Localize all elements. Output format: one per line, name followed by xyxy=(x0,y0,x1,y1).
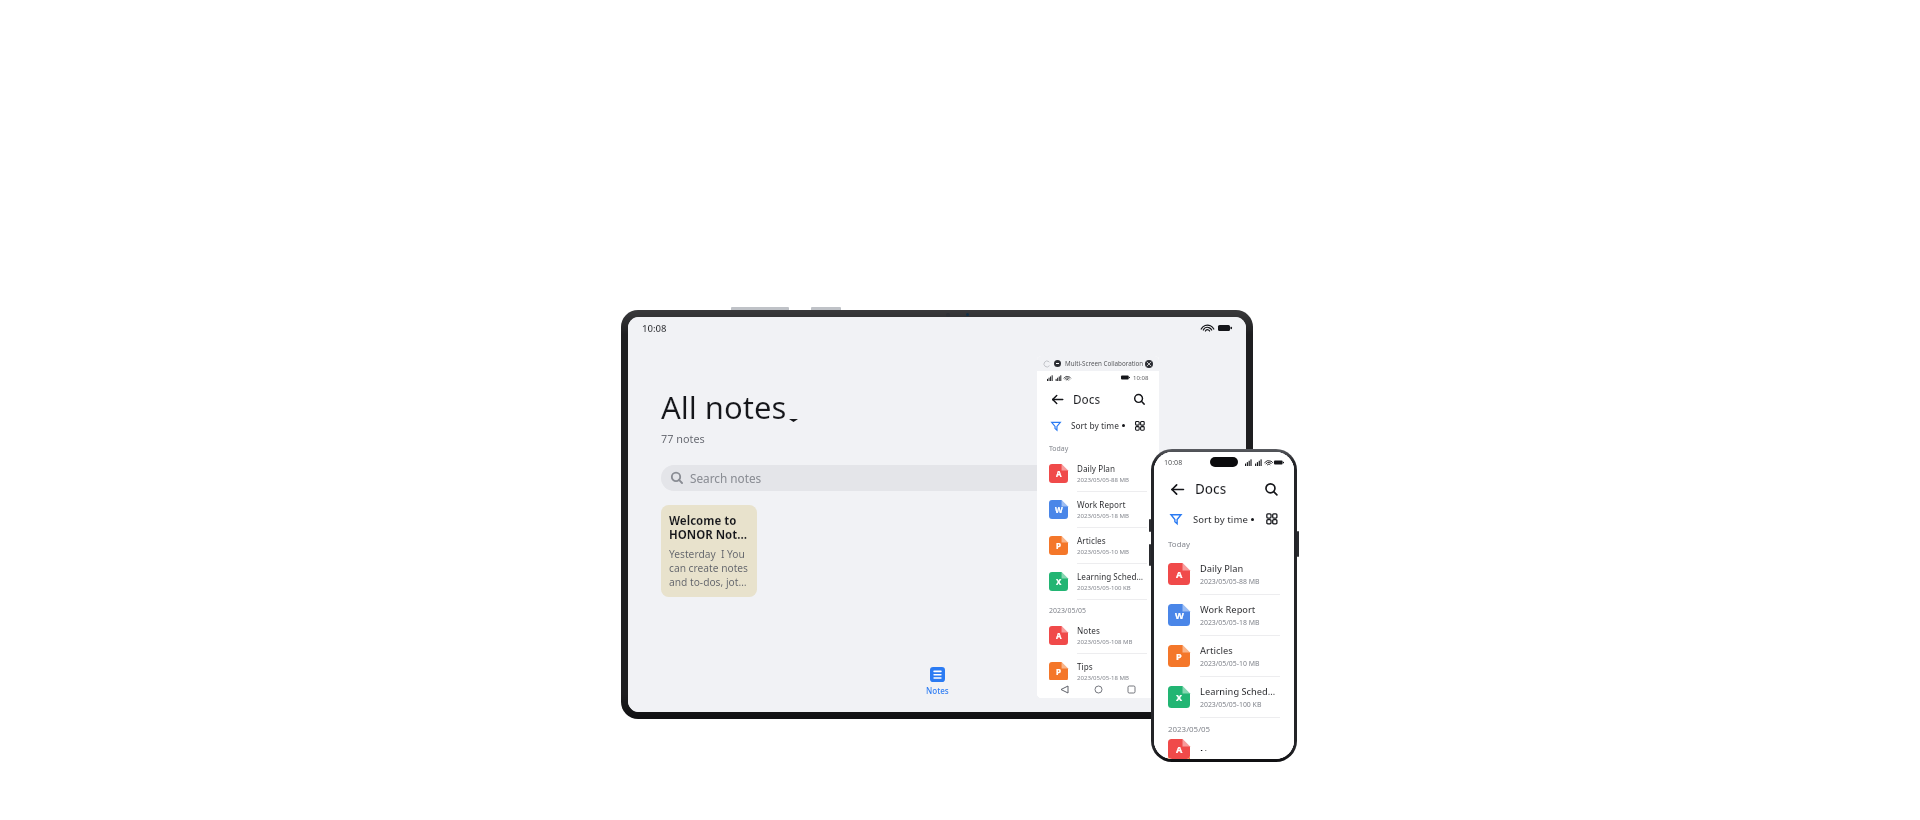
staticText: 2023/05/05 xyxy=(1168,724,1211,735)
staticText: A xyxy=(1176,743,1183,755)
staticText: Yesterday I You can create notes and to-… xyxy=(669,547,749,589)
staticText: Notes xyxy=(1077,625,1100,636)
staticText: Docs xyxy=(1195,480,1227,498)
staticText: Daily Plan xyxy=(1200,562,1244,575)
staticText: A xyxy=(1056,468,1062,479)
staticText: W xyxy=(1055,504,1063,515)
staticText: 2023/05/05-88 MB xyxy=(1200,577,1260,586)
staticText: 2023/05/05-100 KB xyxy=(1200,700,1262,709)
staticText: Today xyxy=(1168,539,1190,550)
staticText: Welcome to HONOR Notes xyxy=(669,513,749,543)
button[interactable]: W xyxy=(1037,492,1159,527)
staticText: Articles xyxy=(1200,644,1233,657)
staticText: 2023/05/05-88 MB xyxy=(1077,476,1130,484)
staticText: Learning Schedule xyxy=(1200,685,1280,698)
button[interactable]: Notes xyxy=(910,667,965,696)
button[interactable]: Filter xyxy=(1167,510,1185,528)
button[interactable]: Back xyxy=(1058,683,1071,696)
button[interactable]: P xyxy=(1037,654,1159,689)
staticText: Search notes xyxy=(690,470,762,486)
staticText: 2023/05/05-10 MB xyxy=(1200,659,1260,668)
staticText: A xyxy=(1176,568,1183,580)
staticText: W xyxy=(1175,609,1184,621)
button[interactable]: Home xyxy=(1092,683,1105,696)
staticText: P xyxy=(1056,540,1061,551)
button[interactable]: Minimize xyxy=(1054,360,1061,367)
staticText: 2023/05/05 xyxy=(1049,606,1086,615)
button[interactable]: P xyxy=(1154,636,1294,676)
staticText: P xyxy=(1176,650,1182,662)
staticText: Learning Schedule xyxy=(1077,571,1147,582)
button[interactable]: Filter xyxy=(1048,418,1064,434)
staticText: Sort by time xyxy=(1193,513,1248,526)
button[interactable]: Search xyxy=(1130,390,1148,408)
button[interactable]: X xyxy=(1037,564,1159,599)
staticText: Work Report xyxy=(1200,603,1256,616)
button[interactable]: Close xyxy=(1145,360,1153,368)
button[interactable]: Search xyxy=(1261,479,1281,499)
button[interactable]: A xyxy=(1037,456,1159,491)
staticText: 10:08 xyxy=(1133,374,1149,382)
button[interactable]: All notes xyxy=(661,386,798,428)
button[interactable]: W xyxy=(1154,595,1294,635)
button[interactable]: Welcome to HONOR Notes xyxy=(661,505,757,597)
staticText: Articles xyxy=(1077,535,1106,546)
staticText: 2023/05/05-100 KB xyxy=(1077,584,1131,592)
button[interactable]: Grid view xyxy=(1132,418,1148,434)
button[interactable]: A xyxy=(1154,554,1294,594)
button[interactable]: Grid view xyxy=(1263,510,1281,528)
staticText: Notes xyxy=(1200,747,1227,751)
button[interactable]: A xyxy=(1154,739,1294,759)
staticText: Notes xyxy=(926,685,949,696)
staticText: Tips xyxy=(1077,661,1093,672)
staticText: Sort by time xyxy=(1071,420,1119,431)
staticText: 2023/05/05-18 MB xyxy=(1200,618,1260,627)
button[interactable]: P xyxy=(1037,528,1159,563)
button[interactable]: X xyxy=(1154,677,1294,717)
button[interactable]: Back xyxy=(1167,479,1187,499)
button[interactable]: Search notes xyxy=(661,465,1213,491)
staticText: A xyxy=(1056,630,1062,641)
staticText: 10:08 xyxy=(642,322,667,335)
staticText: 2023/05/05-18 MB xyxy=(1077,674,1130,682)
staticText: 77 notes xyxy=(661,431,705,446)
staticText: X xyxy=(1176,691,1183,703)
button[interactable]: Sort by time xyxy=(1071,420,1125,431)
staticText: 10:08 xyxy=(1164,457,1183,467)
staticText: Today xyxy=(1049,444,1069,453)
staticText: P xyxy=(1056,666,1061,677)
staticText: 2023/05/05-108 MB xyxy=(1077,638,1133,646)
button[interactable]: Rotate xyxy=(1043,360,1051,368)
staticText: Daily Plan xyxy=(1077,463,1115,474)
staticText: Multi-Screen Collaboration xyxy=(1065,359,1144,368)
staticText: X xyxy=(1056,576,1062,587)
button[interactable]: Sort by time xyxy=(1193,513,1254,526)
button[interactable]: Recents xyxy=(1125,683,1138,696)
staticText: 2023/05/05-18 MB xyxy=(1077,512,1130,520)
staticText: Docs xyxy=(1073,391,1101,407)
button[interactable]: Back xyxy=(1048,390,1066,408)
staticText: Work Report xyxy=(1077,499,1126,510)
button[interactable]: A xyxy=(1037,618,1159,653)
staticText: All notes xyxy=(661,386,787,428)
staticText: 2023/05/05-10 MB xyxy=(1077,548,1130,556)
